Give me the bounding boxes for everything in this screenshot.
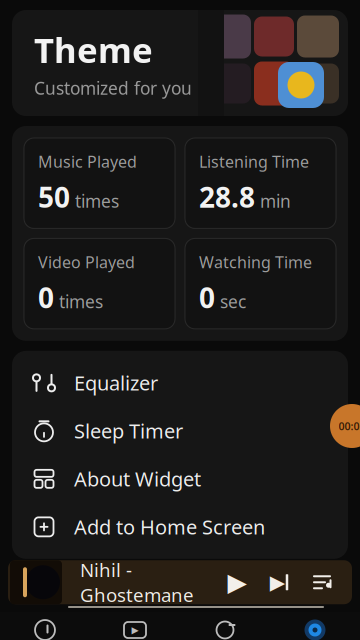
staticText: ▶	[227, 568, 246, 597]
button[interactable]: Next track	[268, 571, 290, 593]
staticText: 00:03	[338, 419, 360, 433]
button[interactable]: Theme	[12, 10, 348, 116]
button[interactable]: Add to Home Screen	[12, 503, 348, 551]
button[interactable]: Nihil - Ghostemane	[8, 560, 352, 604]
button[interactable]: Search	[180, 612, 270, 640]
staticText: sec	[220, 290, 246, 313]
button[interactable]: Sleep timer running	[330, 404, 360, 448]
staticText: ▶	[131, 625, 138, 635]
button[interactable]: Listening Time	[185, 138, 336, 228]
staticText: Theme	[34, 26, 153, 72]
staticText: 0	[199, 279, 215, 316]
staticText: Listening Time	[199, 151, 309, 172]
staticText: min	[260, 189, 291, 212]
staticText: 28.8	[199, 178, 255, 215]
staticText: Video Played	[38, 251, 135, 273]
button[interactable]: Music	[0, 612, 90, 640]
staticText: Nihil - Ghostemane	[80, 557, 194, 607]
staticText: 0	[38, 279, 54, 316]
button[interactable]: About Widget	[12, 455, 348, 503]
staticText: Add to Home Screen	[74, 514, 265, 540]
staticText: Music Played	[38, 151, 137, 172]
button[interactable]: Profile	[270, 612, 360, 640]
staticText: About Widget	[74, 466, 201, 492]
staticText: Sleep Timer	[74, 418, 183, 444]
staticText: 50	[38, 178, 70, 215]
button[interactable]: Watching Time	[185, 238, 336, 329]
staticText: ▶	[270, 571, 285, 594]
staticText: times	[75, 189, 119, 212]
staticText: Equalizer	[74, 370, 158, 396]
button[interactable]: Music Played	[24, 138, 175, 228]
staticText: Watching Time	[199, 251, 312, 273]
staticText: Customized for you	[34, 76, 192, 99]
button[interactable]: Equalizer	[12, 359, 348, 407]
button[interactable]: Video	[90, 612, 180, 640]
button[interactable]: Video Played	[24, 238, 175, 329]
button[interactable]: Play	[226, 571, 248, 593]
staticText: times	[59, 290, 103, 313]
button[interactable]: Playing queue	[310, 571, 334, 593]
button[interactable]: Sleep Timer	[12, 407, 348, 455]
